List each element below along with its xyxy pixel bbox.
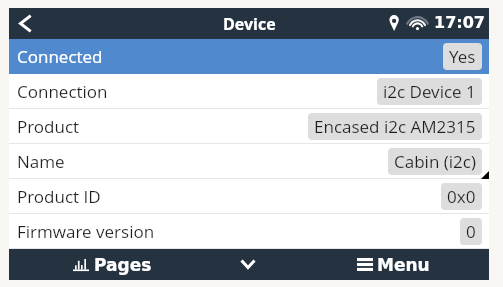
button[interactable]: Firmware version (9, 214, 489, 249)
button[interactable]: Name (9, 144, 489, 179)
button[interactable]: Product (9, 109, 489, 144)
staticText: 17:07 (434, 13, 485, 32)
staticText: Connection (17, 80, 108, 103)
staticText: Product (17, 115, 80, 138)
staticText: Connected (17, 45, 103, 68)
staticText: Menu (377, 255, 430, 275)
staticText: Encased i2c AM2315 (314, 115, 476, 138)
staticText: Product ID (17, 185, 101, 208)
staticText: Yes (449, 45, 476, 68)
button[interactable]: Product ID (9, 179, 489, 214)
staticText: 0x0 (447, 185, 476, 208)
button[interactable]: Menu (357, 249, 457, 280)
staticText: Name (17, 150, 65, 173)
staticText: i2c Device 1 (383, 80, 476, 103)
button[interactable]: Scroll down (212, 249, 284, 280)
button[interactable]: Back (9, 8, 49, 39)
button[interactable]: Pages (73, 249, 183, 280)
staticText: 0 (466, 220, 476, 243)
staticText: Pages (94, 255, 152, 275)
staticText: Firmware version (17, 220, 155, 243)
staticText: Device (223, 13, 276, 35)
button[interactable]: Connected (9, 39, 489, 74)
button[interactable]: Connection (9, 74, 489, 109)
staticText: Cabin (i2c) (394, 150, 476, 173)
